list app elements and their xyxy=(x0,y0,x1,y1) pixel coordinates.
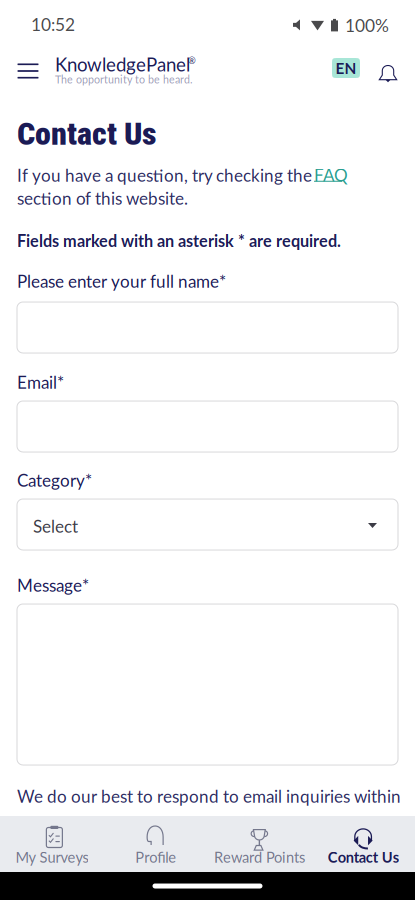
staticText: We do our best to respond to email inqui… xyxy=(17,786,401,806)
staticText: Fields marked with an asterisk * are req… xyxy=(17,231,341,250)
staticText: Profile xyxy=(135,848,176,866)
staticText: ® xyxy=(188,55,196,66)
button[interactable]: Select xyxy=(17,499,398,550)
staticText: EN xyxy=(335,59,356,77)
staticText: Contact Us xyxy=(328,848,399,866)
button[interactable]: Reward Points xyxy=(207,816,311,872)
staticText: 10:52 xyxy=(31,14,75,35)
staticText: Category* xyxy=(17,470,92,490)
staticText: Select xyxy=(33,516,78,536)
staticText: section of this website. xyxy=(17,188,188,208)
staticText: KnowledgePanel xyxy=(55,53,190,75)
button[interactable]: FAQ xyxy=(314,165,348,185)
button[interactable]: Contact Us xyxy=(311,816,415,872)
button[interactable]: My Surveys xyxy=(0,816,104,872)
staticText: Please enter your full name* xyxy=(17,271,226,291)
staticText: If you have a question, try checking the xyxy=(17,165,312,185)
staticText: Reward Points xyxy=(214,848,305,866)
button[interactable]: Notifications xyxy=(370,52,404,86)
button[interactable]: EN xyxy=(332,58,360,78)
staticText: My Surveys xyxy=(15,848,88,866)
button[interactable]: Profile xyxy=(104,816,208,872)
staticText: Message* xyxy=(17,575,89,595)
staticText: 100% xyxy=(345,15,389,36)
staticText: Email* xyxy=(17,372,64,392)
staticText: The opportunity to be heard. xyxy=(55,73,193,86)
button[interactable]: Menu xyxy=(7,50,49,92)
staticText: FAQ xyxy=(314,165,348,185)
staticText: Contact Us xyxy=(17,115,156,152)
